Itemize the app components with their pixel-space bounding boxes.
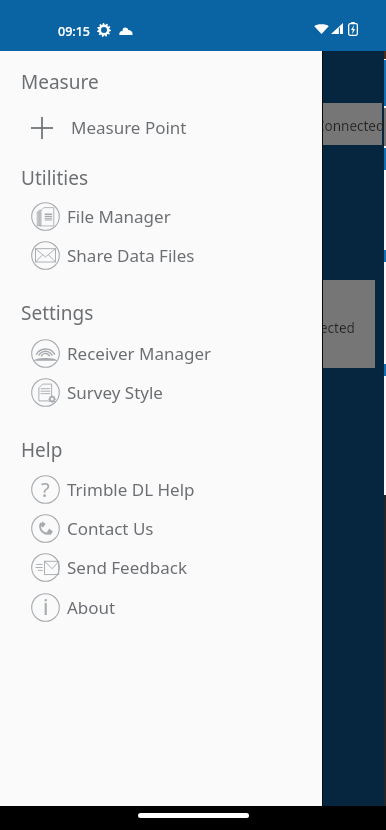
staticText: i [43, 593, 49, 622]
staticText: Measure [21, 69, 99, 95]
staticText: Connected [316, 117, 385, 135]
staticText: Survey Style [67, 381, 163, 404]
staticText: Help [21, 437, 63, 463]
staticText: 09:15 [58, 23, 91, 40]
staticText: Trimble DL Help [67, 478, 195, 501]
button[interactable]: Survey Style [0, 373, 322, 412]
button[interactable]: Send Feedback [0, 548, 322, 587]
staticText: ? [41, 476, 50, 503]
staticText: Measure Point [71, 116, 187, 139]
staticText: Utilities [21, 165, 89, 191]
staticText: Contact Us [67, 517, 154, 540]
button[interactable]: Share Data Files [0, 236, 322, 275]
button[interactable]: File Manager [0, 197, 322, 236]
staticText: Receiver Manager [67, 342, 212, 365]
staticText: Share Data Files [67, 244, 195, 267]
staticText: File Manager [67, 205, 171, 228]
staticText: About [67, 596, 116, 619]
button[interactable]: Receiver Manager [0, 334, 322, 373]
staticText: Settings [21, 300, 94, 326]
staticText: ected [320, 319, 355, 337]
button[interactable]: Contact Us [0, 509, 322, 548]
staticText: Send Feedback [67, 556, 187, 579]
button[interactable]: i [0, 588, 322, 627]
button[interactable]: Measure Point [0, 108, 322, 147]
button[interactable]: ? [0, 470, 322, 509]
